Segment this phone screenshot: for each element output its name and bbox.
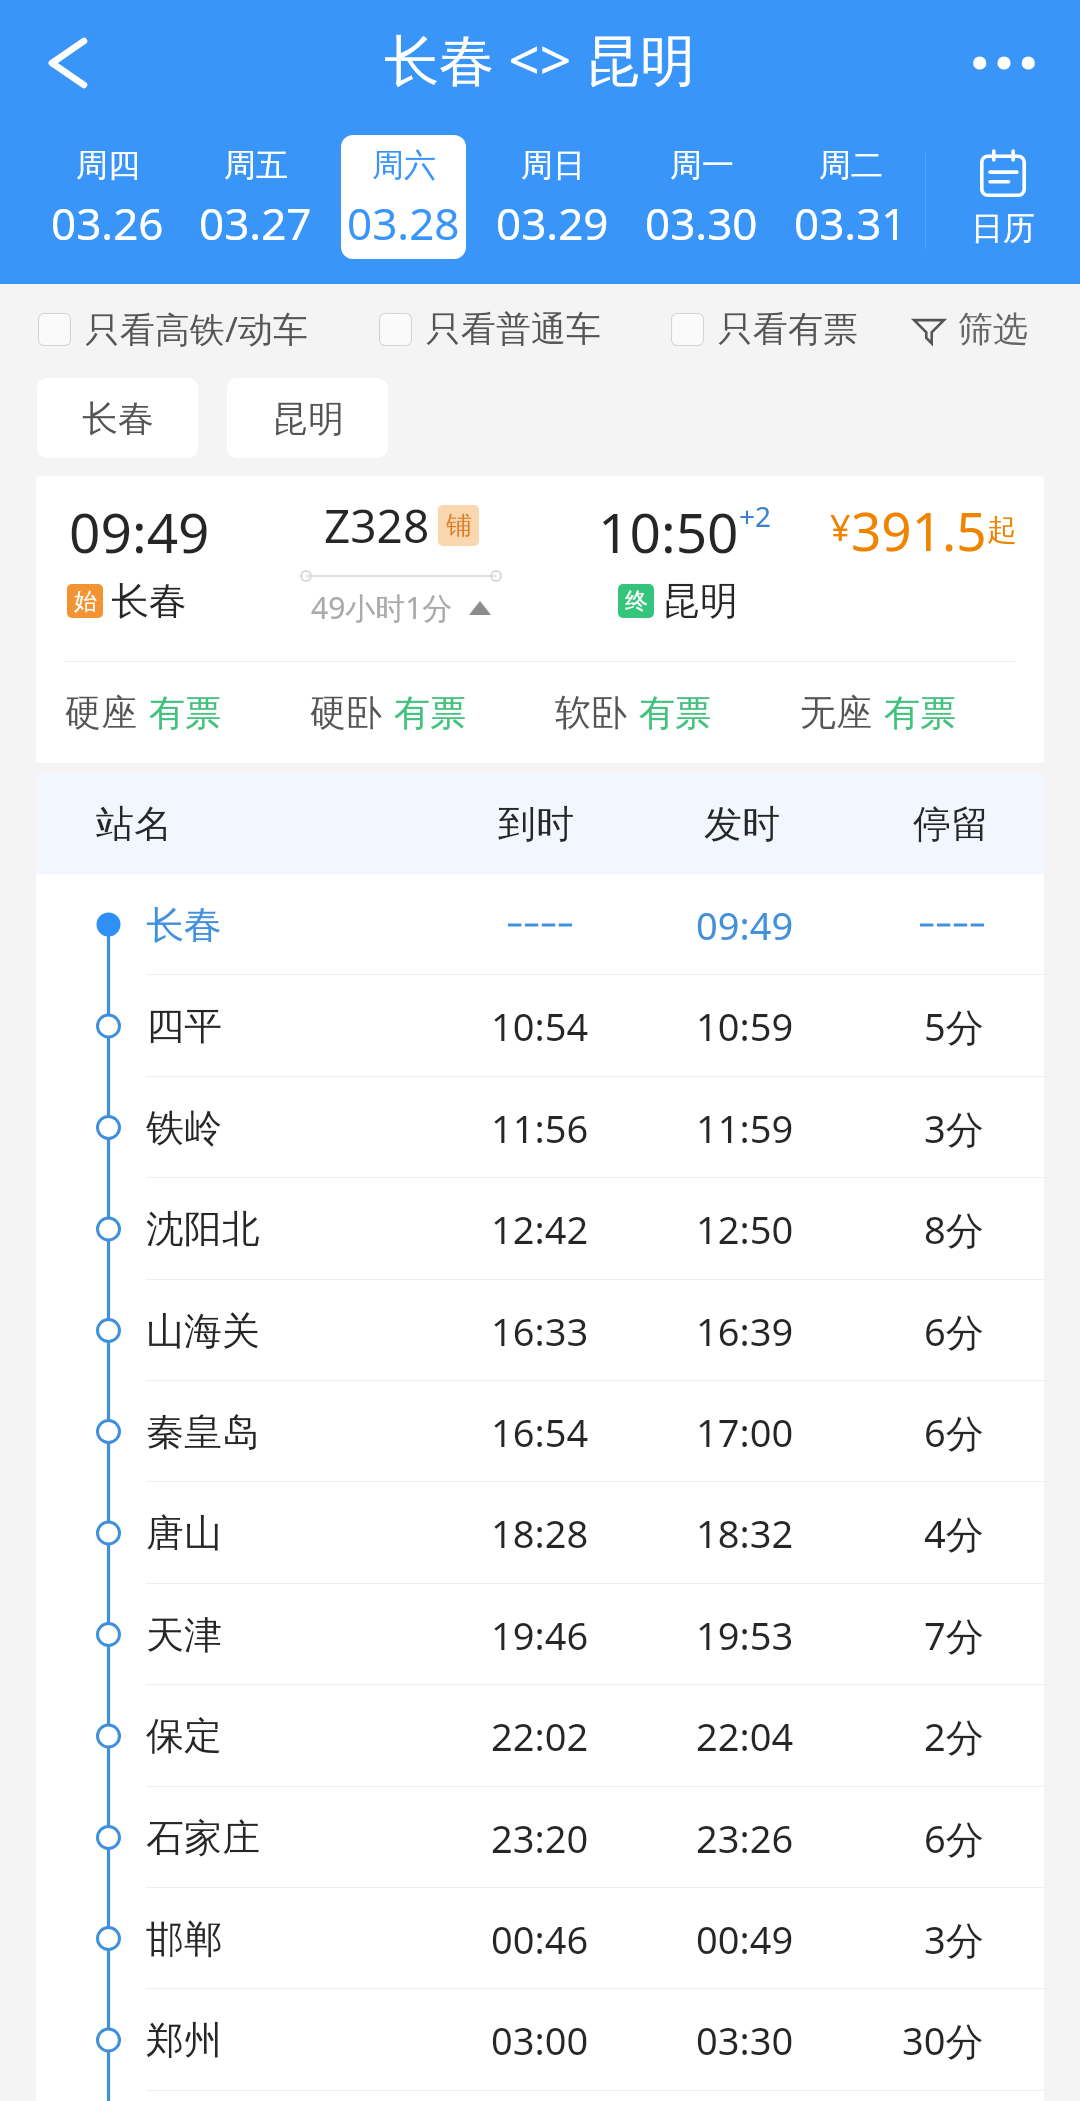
staticText: 16:54 bbox=[491, 1406, 589, 1458]
staticText: 停留 bbox=[913, 800, 989, 848]
staticText: 四平 bbox=[146, 1002, 222, 1050]
staticText: 03.29 bbox=[496, 193, 609, 253]
staticText: 11:56 bbox=[491, 1102, 589, 1154]
staticText: 391.5 bbox=[851, 494, 987, 566]
staticText: 6分 bbox=[924, 1305, 984, 1357]
button[interactable]: 周二 bbox=[788, 135, 913, 259]
button[interactable]: 周日 bbox=[490, 135, 615, 259]
staticText: 周一 bbox=[670, 145, 734, 185]
staticText: 秦皇岛 bbox=[146, 1408, 260, 1456]
staticText: 19:53 bbox=[696, 1609, 794, 1661]
staticText: 4分 bbox=[924, 1507, 984, 1559]
staticText: 日历 bbox=[971, 208, 1035, 248]
staticText: 山海关 bbox=[146, 1307, 260, 1355]
staticText: 18:28 bbox=[491, 1507, 589, 1559]
staticText: 只看高铁/动车 bbox=[85, 305, 309, 353]
staticText: 6分 bbox=[924, 1812, 984, 1864]
button[interactable]: 周五 bbox=[193, 135, 317, 259]
staticText: 03.27 bbox=[199, 193, 312, 253]
staticText: 23:26 bbox=[696, 1812, 794, 1864]
button[interactable]: Back bbox=[30, 27, 102, 99]
staticText: 郑州 bbox=[146, 2016, 222, 2064]
staticText: 22:04 bbox=[696, 1710, 794, 1762]
staticText: 03:30 bbox=[696, 2014, 794, 2066]
staticText: 石家庄 bbox=[146, 1814, 260, 1862]
staticText: 长春 bbox=[82, 396, 154, 441]
staticText: 00:49 bbox=[696, 1913, 794, 1965]
button[interactable]: 昆明 bbox=[227, 378, 388, 458]
staticText: 邯郸 bbox=[146, 1915, 222, 1963]
staticText: 49小时1分 bbox=[311, 587, 453, 628]
staticText: 起 bbox=[987, 511, 1017, 549]
staticText: 站名 bbox=[96, 800, 172, 848]
staticText: 长春 bbox=[111, 577, 187, 625]
staticText: 5分 bbox=[924, 1000, 984, 1052]
staticText: 到时 bbox=[498, 800, 574, 848]
staticText: 始 bbox=[74, 587, 97, 616]
staticText: 周六 bbox=[372, 145, 436, 185]
staticText: 10:50 bbox=[598, 494, 739, 569]
staticText: 03.30 bbox=[645, 193, 758, 253]
staticText: 03.26 bbox=[51, 193, 164, 253]
button[interactable]: More options bbox=[959, 18, 1049, 108]
staticText: 天津 bbox=[146, 1611, 222, 1659]
button[interactable]: 只看普通车 bbox=[379, 307, 601, 351]
staticText: 6分 bbox=[924, 1406, 984, 1458]
staticText: 12:42 bbox=[491, 1203, 589, 1255]
staticText: 09:49 bbox=[696, 899, 794, 951]
staticText: ¥ bbox=[830, 503, 851, 552]
staticText: 3分 bbox=[924, 1913, 984, 1965]
staticText: 昆明 bbox=[662, 577, 738, 625]
staticText: 周二 bbox=[819, 145, 883, 185]
staticText: 有票 bbox=[394, 690, 466, 735]
staticText: 16:33 bbox=[491, 1305, 589, 1357]
staticText: 沈阳北 bbox=[146, 1205, 260, 1253]
staticText: 有票 bbox=[639, 690, 711, 735]
staticText: 发时 bbox=[704, 800, 780, 848]
staticText: 周五 bbox=[224, 145, 288, 185]
staticText: 18:32 bbox=[696, 1507, 794, 1559]
button[interactable]: 周一 bbox=[639, 135, 764, 259]
staticText: 终 bbox=[625, 587, 648, 616]
staticText: 16:39 bbox=[696, 1305, 794, 1357]
staticText: 有票 bbox=[884, 690, 956, 735]
staticText: 无座 bbox=[800, 690, 872, 735]
button[interactable]: 周四 bbox=[45, 135, 169, 259]
staticText: 23:20 bbox=[491, 1812, 589, 1864]
staticText: 硬座 bbox=[65, 690, 137, 735]
staticText: 19:46 bbox=[491, 1609, 589, 1661]
staticText: 软卧 bbox=[555, 690, 627, 735]
button[interactable]: 只看高铁/动车 bbox=[38, 305, 309, 353]
staticText: 筛选 bbox=[958, 307, 1028, 351]
staticText: 铁岭 bbox=[146, 1104, 222, 1152]
staticText: 昆明 bbox=[272, 396, 344, 441]
button[interactable]: 筛选 bbox=[912, 307, 1028, 351]
staticText: 只看普通车 bbox=[426, 307, 601, 351]
staticText: 唐山 bbox=[146, 1509, 222, 1557]
staticText: 2分 bbox=[924, 1710, 984, 1762]
staticText: 03.28 bbox=[347, 193, 460, 253]
staticText: 7分 bbox=[924, 1609, 984, 1661]
staticText: 09:49 bbox=[69, 494, 210, 569]
staticText: 03:00 bbox=[491, 2014, 589, 2066]
button[interactable]: 长春 bbox=[37, 378, 198, 458]
staticText: Z328 bbox=[324, 494, 430, 557]
staticText: +2 bbox=[739, 497, 772, 535]
button[interactable]: 只看有票 bbox=[671, 307, 858, 351]
staticText: 00:46 bbox=[491, 1913, 589, 1965]
staticText: 长春 bbox=[146, 901, 222, 949]
staticText: 3分 bbox=[924, 1102, 984, 1154]
staticText: 11:59 bbox=[696, 1102, 794, 1154]
staticText: 03.31 bbox=[794, 193, 907, 253]
staticText: 有票 bbox=[149, 690, 221, 735]
staticText: 8分 bbox=[924, 1203, 984, 1255]
staticText: 17:00 bbox=[696, 1406, 794, 1458]
button[interactable]: 日历 bbox=[926, 131, 1080, 271]
staticText: 10:54 bbox=[491, 1000, 589, 1052]
staticText: 铺 bbox=[446, 509, 472, 542]
button[interactable]: 周六 bbox=[341, 135, 466, 259]
staticText: 周日 bbox=[521, 145, 585, 185]
staticText: 保定 bbox=[146, 1712, 222, 1760]
staticText: 12:50 bbox=[696, 1203, 794, 1255]
staticText: 只看有票 bbox=[718, 307, 858, 351]
